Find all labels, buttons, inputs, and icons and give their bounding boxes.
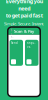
staticText: Send xyxy=(11,41,18,45)
staticText: Simple. Secure. Instant. xyxy=(4,21,44,26)
staticText: Scan & Pay xyxy=(14,29,34,34)
staticText: Balance xyxy=(10,25,13,50)
staticText: Everything you need to get paid fast xyxy=(5,0,42,19)
staticText: Request xyxy=(26,41,35,48)
